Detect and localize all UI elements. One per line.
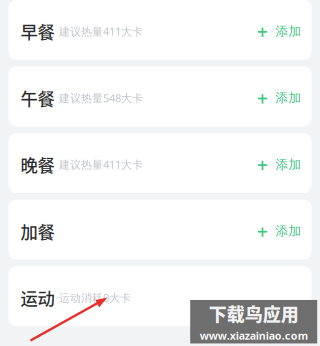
button[interactable]: 晚餐 — [8, 133, 311, 193]
staticText: 运动消耗0大卡 — [59, 290, 131, 305]
staticText: 添加 — [275, 90, 301, 106]
button[interactable]: 添加 — [244, 82, 301, 114]
staticText: 下载鸟应用 — [209, 300, 299, 326]
staticText: 添加 — [275, 223, 301, 239]
staticText: 加餐 — [20, 219, 54, 244]
staticText: 午餐 — [20, 85, 54, 110]
staticText: 建议热量548大卡 — [59, 90, 143, 105]
button[interactable]: 添加 — [244, 15, 301, 47]
button[interactable]: 添加 — [244, 148, 301, 180]
staticText: 运动 — [20, 285, 54, 310]
button[interactable]: 添加 — [244, 215, 301, 247]
staticText: 晚餐 — [20, 152, 54, 177]
button[interactable]: 运动 — [8, 266, 311, 326]
button[interactable]: 午餐 — [8, 66, 311, 126]
staticText: 添加 — [275, 156, 301, 172]
button[interactable]: 加餐 — [8, 200, 311, 260]
staticText: 早餐 — [20, 19, 54, 44]
staticText: 建议热量411大卡 — [59, 24, 143, 39]
staticText: 建议热量411大卡 — [59, 157, 143, 172]
staticText: www.xiazainiao.com — [200, 328, 308, 343]
button[interactable]: 早餐 — [8, 0, 311, 60]
staticText: 添加 — [275, 23, 301, 39]
